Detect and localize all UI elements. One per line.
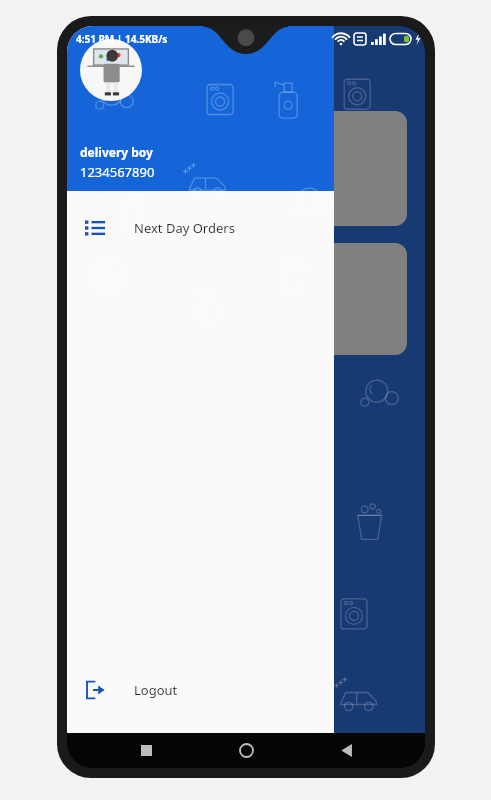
staticText: 4:51 PM | 14.5KB/s: [76, 32, 168, 46]
button[interactable]: Logout: [67, 669, 334, 711]
button[interactable]: Next Day Orders: [67, 207, 334, 249]
button[interactable]: Home: [225, 733, 267, 768]
button[interactable]: Back: [325, 733, 367, 768]
staticText: Next Day Orders: [134, 219, 235, 237]
staticText: Logout: [134, 681, 178, 699]
button[interactable]: Recent apps: [125, 733, 167, 768]
other: Profile photo: [80, 39, 142, 101]
staticText: 1234567890: [80, 163, 155, 181]
staticText: delivery boy: [80, 144, 153, 160]
